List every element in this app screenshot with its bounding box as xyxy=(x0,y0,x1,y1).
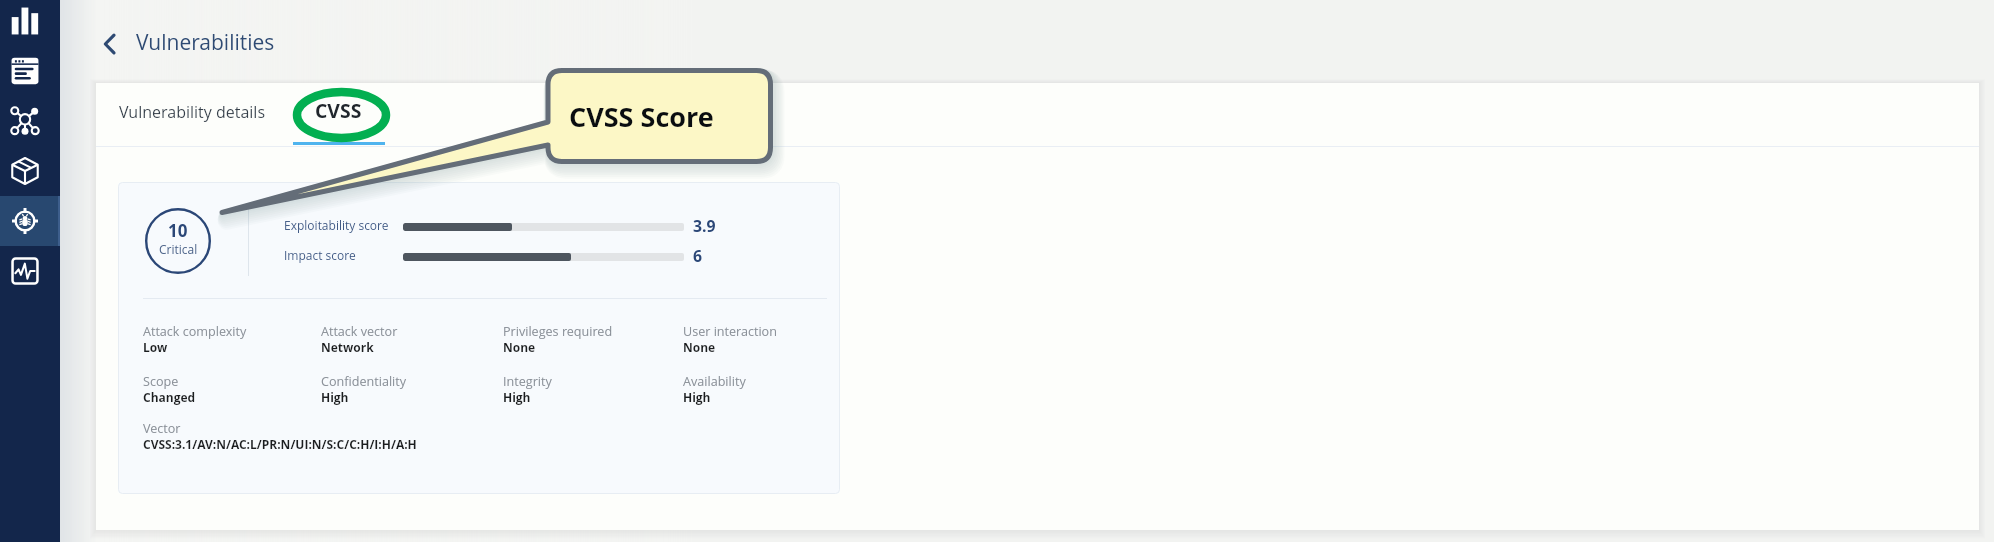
staticText: High xyxy=(683,389,711,405)
button[interactable]: Vulnerabilities xyxy=(0,196,60,246)
button[interactable]: Reports xyxy=(0,46,60,96)
staticText: High xyxy=(503,389,531,405)
staticText: 6 xyxy=(693,245,703,267)
staticText: Scope xyxy=(143,373,179,390)
button[interactable]: Vulnerability details xyxy=(111,92,278,142)
staticText: CVSS Score xyxy=(569,98,714,135)
staticText: CVSS:3.1/AV:N/AC:L/PR:N/UI:N/S:C/C:H/I:H… xyxy=(143,436,417,452)
staticText: Confidentiality xyxy=(321,373,407,390)
staticText: Changed xyxy=(143,389,196,405)
staticText: Availability xyxy=(683,373,746,390)
staticText: Attack complexity xyxy=(143,323,247,340)
staticText: Impact score xyxy=(284,247,356,263)
staticText: Network xyxy=(321,339,374,355)
staticText: High xyxy=(321,389,349,405)
button[interactable]: CVSS xyxy=(293,92,385,145)
staticText: None xyxy=(683,339,716,355)
staticText: Attack vector xyxy=(321,323,398,340)
staticText: Privileges required xyxy=(503,323,613,340)
staticText: Exploitability score xyxy=(284,217,389,233)
button[interactable]: Dashboard xyxy=(0,0,60,46)
staticText: User interaction xyxy=(683,323,777,340)
staticText: Integrity xyxy=(503,373,552,390)
staticText: 10 xyxy=(168,219,188,242)
button[interactable]: Monitoring xyxy=(0,246,60,296)
staticText: 3.9 xyxy=(693,215,716,237)
staticText: Vector xyxy=(143,420,181,437)
staticText: Vulnerability details xyxy=(119,101,266,123)
staticText: CVSS xyxy=(315,97,362,123)
staticText: None xyxy=(503,339,536,355)
button[interactable]: Back xyxy=(91,26,127,62)
button[interactable]: Packages xyxy=(0,146,60,196)
staticText: Critical xyxy=(159,241,198,257)
staticText: Vulnerabilities xyxy=(136,28,275,57)
button[interactable]: Topology xyxy=(0,96,60,146)
staticText: Low xyxy=(143,339,168,355)
